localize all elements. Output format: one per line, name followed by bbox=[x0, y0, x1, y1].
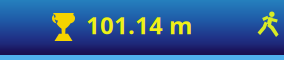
staticText: 101.14 m bbox=[86, 9, 192, 41]
button[interactable]: 101.14 m bbox=[51, 13, 192, 41]
button[interactable]: Start run bbox=[258, 12, 279, 37]
